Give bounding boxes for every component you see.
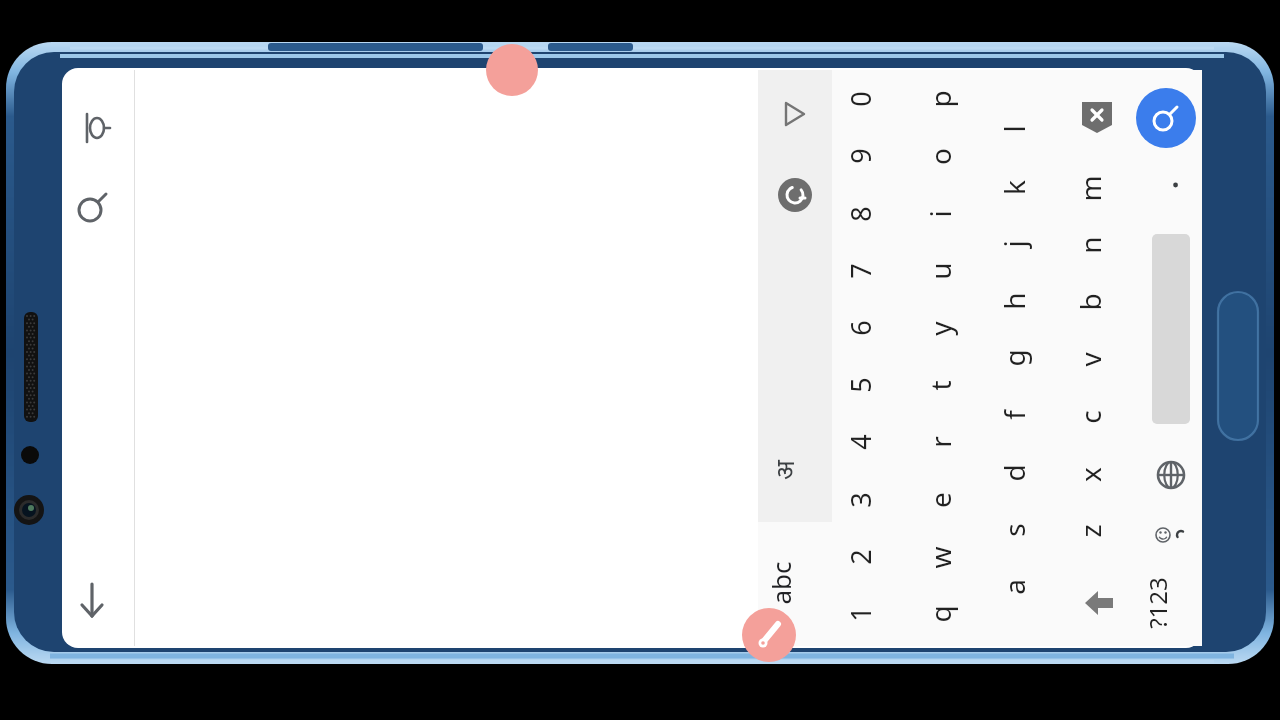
button[interactable]: Add note [486, 44, 538, 96]
button[interactable] [136, 70, 758, 646]
staticText: g [995, 349, 1047, 367]
button[interactable]: Symbols [1150, 572, 1194, 634]
staticText: i [921, 210, 973, 218]
button[interactable]: Comma [1144, 508, 1198, 562]
staticText: 4 [842, 434, 894, 450]
button[interactable]: Keyboard settings [770, 170, 820, 220]
staticText: y [921, 321, 973, 336]
button[interactable]: Backspace [1073, 576, 1127, 630]
staticText: 0 [842, 91, 894, 107]
button[interactable]: Period [1152, 166, 1190, 204]
staticText: r [921, 436, 973, 448]
staticText: a [995, 579, 1047, 595]
staticText: 5 [842, 377, 894, 393]
staticText: b [1071, 293, 1123, 311]
staticText: 8 [842, 206, 894, 222]
button[interactable]: Compose [742, 608, 796, 662]
button[interactable]: Expand toolbar [768, 88, 820, 140]
staticText: ?123 [1141, 577, 1203, 629]
staticText: अ [766, 460, 826, 480]
button[interactable]: Search [1136, 88, 1196, 148]
staticText: o [921, 148, 973, 165]
staticText: x [1071, 467, 1123, 482]
button[interactable]: Format [66, 100, 122, 156]
staticText: c [1071, 410, 1123, 424]
staticText: z [1071, 524, 1123, 538]
staticText: p [921, 90, 973, 108]
button[interactable]: Back [64, 572, 120, 628]
button[interactable]: Search [66, 180, 120, 234]
staticText: e [921, 492, 973, 508]
staticText: t [921, 380, 973, 391]
staticText: w [921, 546, 973, 569]
staticText: q [921, 605, 973, 623]
staticText: l [995, 125, 1047, 133]
staticText: abc [763, 561, 829, 605]
staticText: n [1071, 236, 1123, 254]
staticText: 2 [842, 549, 894, 565]
staticText: h [995, 292, 1047, 310]
staticText: s [995, 523, 1047, 537]
staticText: 6 [842, 320, 894, 336]
staticText: quill the padhai app [0, 278, 241, 512]
staticText: j [995, 240, 1047, 248]
button[interactable]: Change language [1144, 448, 1198, 502]
staticText: f [995, 410, 1047, 420]
button[interactable]: Shift [1073, 92, 1121, 140]
staticText: v [1071, 352, 1123, 367]
staticText: u [921, 262, 973, 280]
staticText: 7 [842, 263, 894, 279]
staticText: 1 [842, 606, 894, 622]
staticText: k [995, 180, 1047, 195]
staticText: m [1071, 175, 1123, 202]
staticText: d [995, 464, 1047, 482]
staticText: 3 [842, 492, 894, 508]
staticText: 9 [842, 148, 894, 164]
